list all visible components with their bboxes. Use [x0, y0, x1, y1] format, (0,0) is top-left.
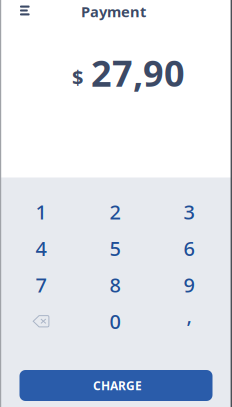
button[interactable]: 9	[152, 266, 226, 303]
button[interactable]: CHARGE	[19, 370, 212, 401]
button[interactable]: 1	[4, 193, 78, 230]
staticText: 1	[35, 198, 46, 225]
button[interactable]: 7	[4, 266, 78, 303]
staticText: 0	[109, 308, 120, 335]
button[interactable]: 0	[78, 303, 152, 339]
staticText: ,	[186, 302, 191, 329]
button[interactable]: Menu	[0, 0, 40, 20]
staticText: CHARGE	[93, 377, 142, 393]
button[interactable]: 4	[4, 230, 78, 266]
staticText: 3	[183, 198, 194, 225]
staticText: 6	[183, 235, 194, 262]
button[interactable]: 3	[152, 193, 226, 230]
staticText: $	[72, 64, 83, 90]
staticText: 2	[109, 198, 120, 225]
staticText: 5	[109, 235, 120, 262]
staticText: 4	[35, 235, 46, 262]
staticText: 27,90	[91, 49, 185, 97]
button[interactable]: 5	[78, 230, 152, 266]
staticText: 7	[35, 271, 46, 298]
staticText: 8	[109, 271, 120, 298]
button[interactable]: 8	[78, 266, 152, 303]
staticText: Payment	[81, 2, 146, 21]
staticText: 9	[183, 271, 194, 298]
button[interactable]: Delete	[4, 303, 78, 339]
button[interactable]: ,	[152, 303, 226, 339]
button[interactable]: 2	[78, 193, 152, 230]
button[interactable]: 6	[152, 230, 226, 266]
